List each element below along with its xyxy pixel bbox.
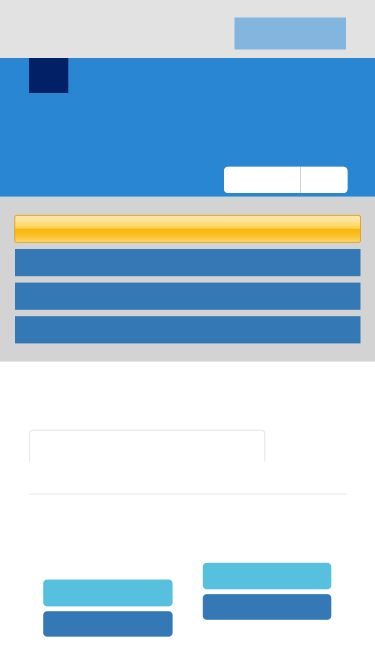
button[interactable]: Action 1 — [43, 579, 173, 606]
button[interactable]: Menu item 4 — [15, 316, 360, 343]
button[interactable]: Action 4 — [203, 594, 331, 620]
button[interactable]: Search field — [29, 430, 265, 461]
button[interactable]: Account — [234, 17, 346, 49]
button[interactable]: Segment two — [301, 167, 347, 193]
button[interactable]: Segment one — [224, 167, 300, 193]
button[interactable]: Menu item 1, selected — [15, 215, 361, 242]
button[interactable]: Action 3 — [203, 563, 331, 589]
button[interactable]: Menu item 3 — [15, 283, 360, 310]
button[interactable]: Action 2 — [43, 611, 173, 637]
